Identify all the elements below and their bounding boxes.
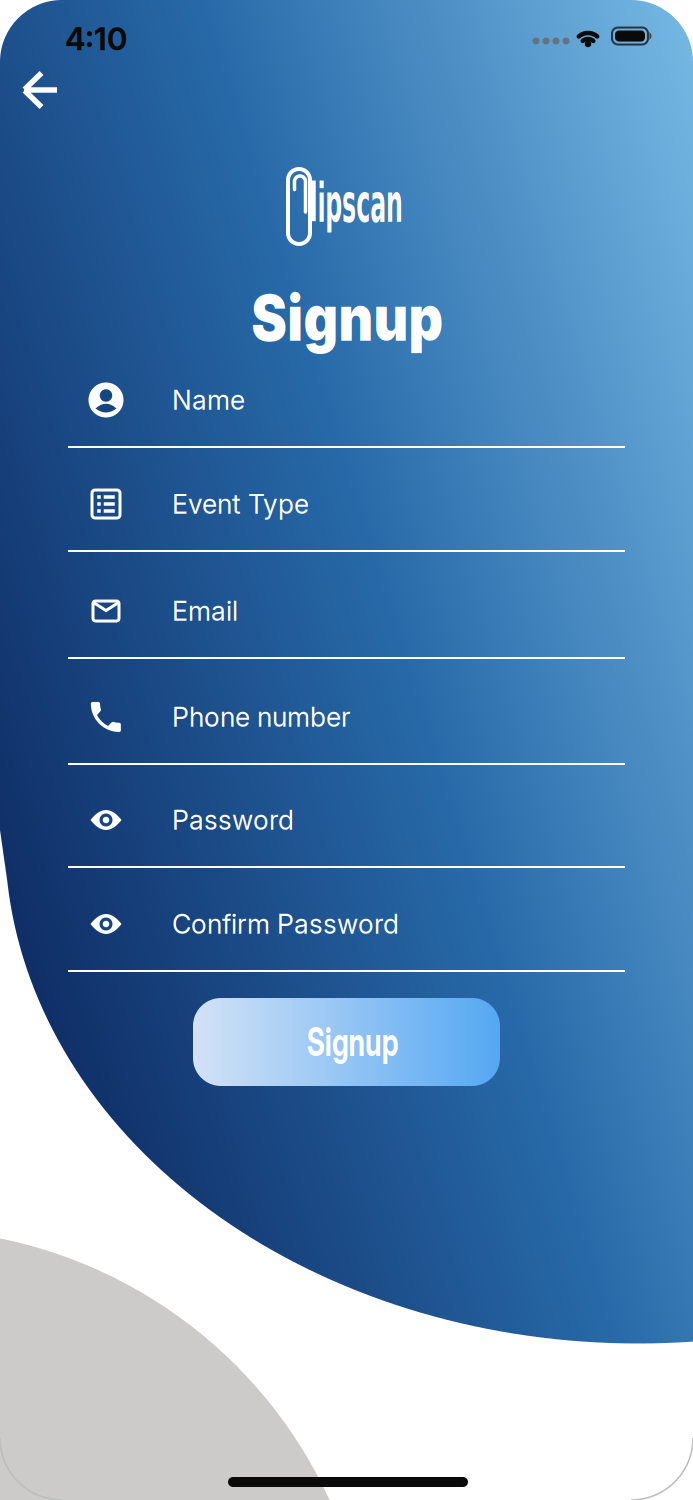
staticText: Password (172, 804, 294, 836)
staticText: 4:10 (65, 21, 127, 57)
staticText: Confirm Password (172, 908, 399, 940)
button[interactable]: Event Type (68, 484, 625, 591)
staticText: Signup (235, 281, 459, 355)
staticText: Email (172, 595, 238, 627)
button[interactable]: Phone number (68, 697, 625, 800)
button[interactable]: Email (68, 591, 625, 697)
button[interactable]: Name (68, 380, 625, 484)
button[interactable]: Password (68, 800, 625, 904)
staticText: lipscan (309, 172, 498, 234)
button[interactable]: Signup (193, 998, 500, 1086)
staticText: Signup (289, 1019, 416, 1065)
staticText: Phone number (172, 701, 351, 733)
button[interactable]: Confirm Password (68, 904, 625, 1008)
staticText: Event Type (172, 488, 309, 520)
staticText: Name (172, 384, 245, 416)
button[interactable]: Back (15, 64, 65, 115)
